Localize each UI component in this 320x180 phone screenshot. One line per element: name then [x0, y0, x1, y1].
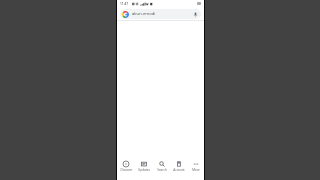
staticText: Search [157, 168, 167, 172]
staticText: Updates [138, 168, 150, 172]
staticText: Discover [120, 168, 133, 172]
staticText: 11:47 [120, 2, 129, 6]
button[interactable]: akun.emodi [120, 9, 201, 19]
button[interactable]: More [187, 158, 204, 174]
button[interactable]: Updates [135, 158, 153, 174]
button[interactable]: Search [153, 158, 170, 174]
button[interactable]: Account [170, 158, 187, 174]
staticText: akun.emodi [132, 11, 192, 17]
button[interactable]: Voice search [192, 11, 199, 18]
staticText: Account [173, 168, 185, 172]
button[interactable]: Discover [117, 158, 135, 174]
staticText: More [192, 168, 200, 172]
